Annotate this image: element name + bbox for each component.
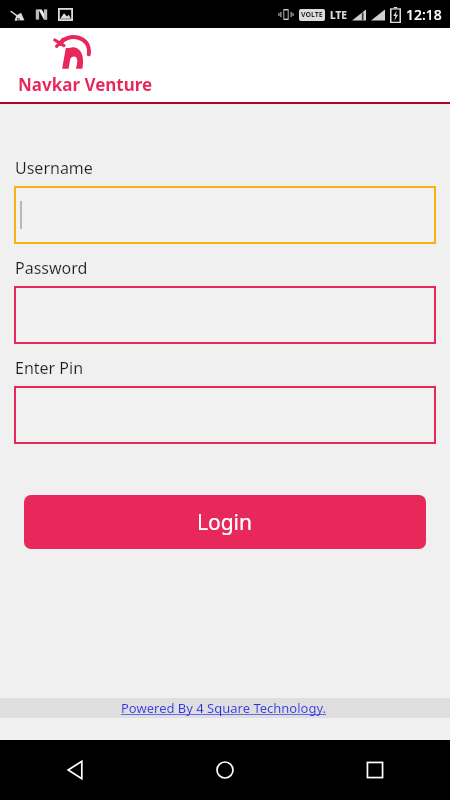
button[interactable]: Powered By 4 Square Technology. xyxy=(0,698,450,718)
staticText: Password xyxy=(15,257,88,279)
staticText: Powered By 4 Square Technology. xyxy=(121,699,330,717)
button[interactable]: Back xyxy=(0,740,150,800)
button[interactable] xyxy=(14,186,436,244)
staticText: VOLTE xyxy=(301,10,323,20)
staticText: Navkar Venture xyxy=(18,73,153,96)
button[interactable]: Recent apps xyxy=(300,740,450,800)
button[interactable]: Login xyxy=(24,495,426,549)
staticText: Login xyxy=(197,508,253,537)
staticText: 12:18 xyxy=(406,5,442,24)
staticText: Enter Pin xyxy=(15,357,84,379)
staticText: LTE xyxy=(330,8,347,22)
staticText: Username xyxy=(15,157,93,179)
button[interactable] xyxy=(14,286,436,344)
button[interactable]: Home xyxy=(150,740,300,800)
button[interactable] xyxy=(14,386,436,444)
